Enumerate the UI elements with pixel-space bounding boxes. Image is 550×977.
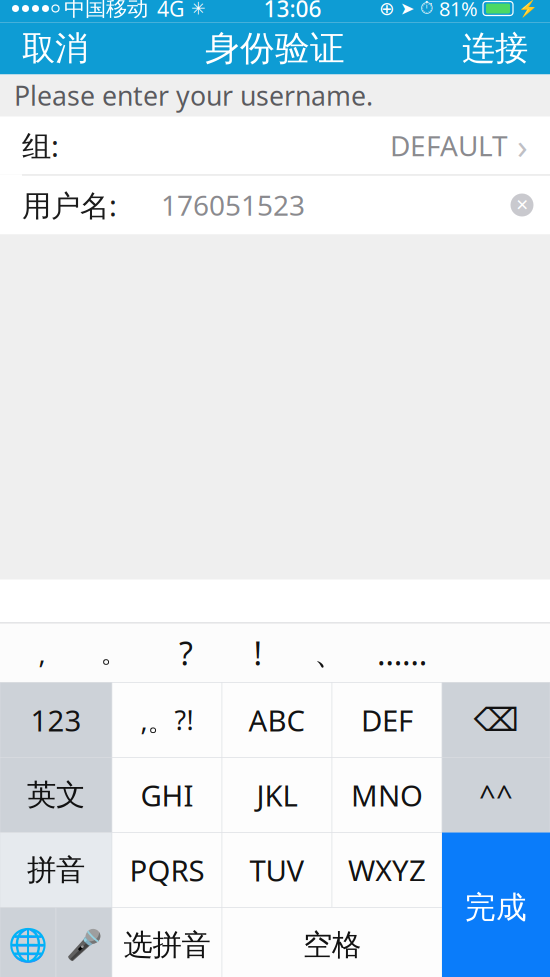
button[interactable]: 。 <box>78 623 150 682</box>
staticText: 176051523 <box>161 186 305 224</box>
staticText: 。 <box>100 637 127 669</box>
staticText: …… <box>377 632 427 674</box>
button[interactable]: ⌫ <box>442 682 550 757</box>
staticText: TUV <box>249 850 304 889</box>
staticText: 拼音 <box>27 852 85 888</box>
button[interactable]: 拼音 <box>0 832 112 907</box>
staticText: 4G <box>157 0 185 23</box>
button[interactable]: ! <box>222 623 294 682</box>
staticText: ⚡ <box>518 0 538 18</box>
button[interactable]: ? <box>150 623 222 682</box>
staticText: ,。?! <box>140 702 193 738</box>
staticText: 英文 <box>27 777 85 813</box>
staticText: Please enter your username. <box>14 78 373 113</box>
staticText: 🌐 <box>8 927 48 963</box>
staticText: ⊕ <box>379 0 395 19</box>
button[interactable]: , <box>6 623 78 682</box>
button[interactable]: TUV <box>222 832 332 907</box>
staticText: MNO <box>351 775 423 814</box>
staticText: 身份验证 <box>205 27 345 70</box>
staticText: 中国移动 <box>64 0 148 22</box>
button[interactable]: 选拼音 <box>112 907 222 977</box>
staticText: JKL <box>256 775 297 814</box>
button[interactable]: ABC <box>222 682 332 757</box>
staticText: 完成 <box>465 889 527 926</box>
staticText: › <box>517 122 528 168</box>
button[interactable]: ,。?! <box>112 682 222 757</box>
staticText: 13:06 <box>263 0 321 23</box>
staticText: 81% <box>439 0 478 22</box>
staticText: 🎤 <box>65 928 102 962</box>
staticText: 用户名: <box>22 185 117 224</box>
button[interactable]: 123 <box>0 682 112 757</box>
staticText: DEFAULT <box>390 127 508 164</box>
staticText: 组: <box>22 126 59 165</box>
staticText: ! <box>253 632 262 674</box>
button[interactable]: 英文 <box>0 757 112 832</box>
button[interactable]: 组: <box>0 116 550 174</box>
staticText: PQRS <box>129 850 204 889</box>
button[interactable]: …… <box>366 623 438 682</box>
button[interactable]: PQRS <box>112 832 222 907</box>
staticText: WXYZ <box>348 850 426 889</box>
staticText: ⏱ <box>420 0 434 17</box>
staticText: ABC <box>248 700 305 739</box>
button[interactable]: GHI <box>112 757 222 832</box>
button[interactable]: JKL <box>222 757 332 832</box>
staticText: ✕ <box>515 196 528 214</box>
button[interactable]: 空格 <box>222 907 442 977</box>
staticText: , <box>38 635 45 671</box>
staticText: ? <box>179 632 193 674</box>
staticText: 选拼音 <box>123 927 210 963</box>
button[interactable]: Switch keyboard <box>0 907 56 977</box>
button[interactable]: MNO <box>332 757 442 832</box>
button[interactable]: Clear text <box>502 183 542 227</box>
staticText: ✳ <box>191 0 206 18</box>
button[interactable]: 取消 <box>0 22 110 74</box>
button[interactable]: DEF <box>332 682 442 757</box>
button[interactable]: WXYZ <box>332 832 442 907</box>
staticText: 取消 <box>22 28 88 69</box>
staticText: GHI <box>140 775 193 814</box>
button[interactable]: 连接 <box>440 22 550 74</box>
staticText: 、 <box>314 633 346 673</box>
staticText: ⌫ <box>473 702 518 738</box>
staticText: ➤ <box>400 0 415 18</box>
button[interactable]: 、 <box>294 623 366 682</box>
staticText: DEF <box>361 700 413 739</box>
staticText: 123 <box>30 700 81 739</box>
staticText: 连接 <box>462 28 528 69</box>
staticText: 空格 <box>303 927 361 963</box>
button[interactable]: Dictation <box>56 907 112 977</box>
button[interactable]: 完成 <box>442 832 550 977</box>
staticText: ^^ <box>479 775 513 814</box>
button[interactable]: ^^ <box>442 757 550 832</box>
